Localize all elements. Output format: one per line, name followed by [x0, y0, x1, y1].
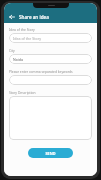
staticText: Please enter comma separated keywords	[9, 69, 73, 73]
button[interactable]: Idea of the Story	[9, 33, 92, 43]
staticText: SEND	[45, 151, 56, 156]
staticText: City	[9, 48, 15, 52]
button[interactable]	[9, 96, 92, 140]
button[interactable]	[9, 75, 92, 85]
staticText: Idea of the Story	[9, 27, 35, 31]
button[interactable]: Noida	[9, 54, 92, 64]
staticText: Noida	[13, 57, 24, 62]
staticText: Idea of the Story	[13, 36, 41, 41]
staticText: Story Description	[9, 90, 36, 94]
staticText: Share an idea	[19, 14, 49, 20]
button[interactable]: Back	[7, 12, 16, 21]
button[interactable]: SEND	[28, 148, 73, 158]
